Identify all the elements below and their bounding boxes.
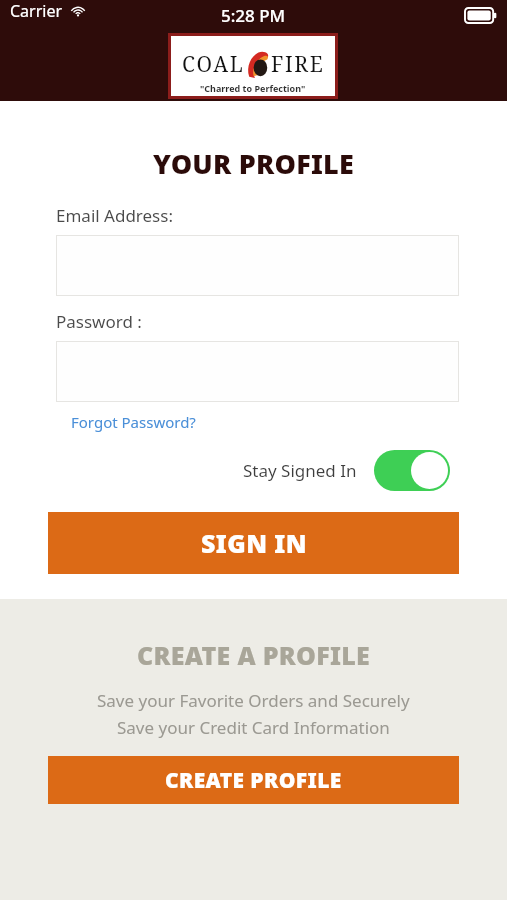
- button[interactable]: SIGN IN: [48, 512, 459, 574]
- staticText: Save your Credit Card Information: [117, 716, 390, 739]
- staticText: Stay Signed In: [243, 459, 357, 482]
- staticText: "Charred to Perfection": [200, 82, 306, 94]
- staticText: COAL: [182, 50, 245, 79]
- staticText: CREATE PROFILE: [165, 766, 342, 795]
- staticText: 5:28 PM: [221, 4, 286, 27]
- button[interactable]: Text field: [56, 341, 459, 402]
- button[interactable]: Text field: [56, 235, 459, 296]
- staticText: Save your Favorite Orders and Securely: [97, 689, 410, 712]
- button[interactable]: Stay Signed In toggle: [374, 450, 450, 491]
- staticText: SIGN IN: [201, 526, 307, 560]
- staticText: FIRE: [271, 50, 325, 79]
- button[interactable]: Coal Fire logo: [171, 36, 335, 96]
- button[interactable]: Stay Signed In: [243, 450, 450, 491]
- button[interactable]: Forgot Password?: [71, 412, 196, 432]
- staticText: CREATE A PROFILE: [137, 638, 371, 672]
- button[interactable]: CREATE PROFILE: [48, 756, 459, 804]
- staticText: Forgot Password?: [71, 412, 196, 432]
- staticText: Password :: [56, 310, 142, 333]
- staticText: Carrier: [10, 0, 63, 22]
- staticText: YOUR PROFILE: [0, 145, 507, 182]
- staticText: Email Address:: [56, 204, 173, 227]
